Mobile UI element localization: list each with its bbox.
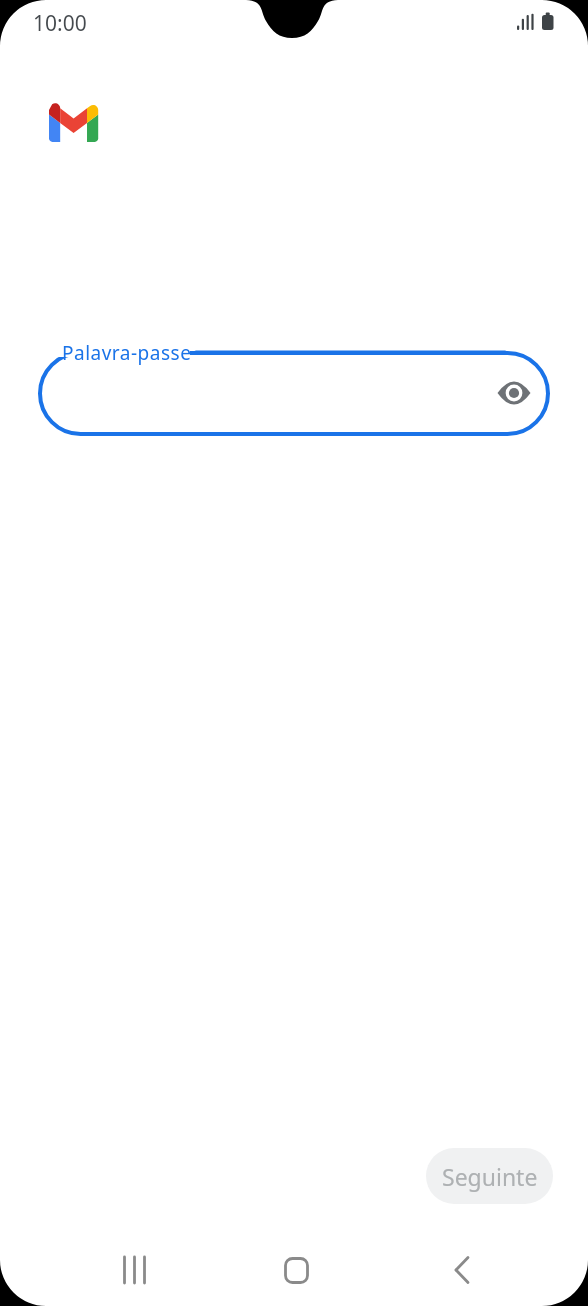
staticText: Palavra-passe bbox=[62, 340, 192, 366]
button[interactable] bbox=[432, 1240, 492, 1300]
button[interactable]: Seguinte bbox=[426, 1148, 553, 1204]
button[interactable] bbox=[489, 368, 539, 418]
staticText: 10:00 bbox=[33, 9, 87, 38]
button[interactable] bbox=[104, 1240, 164, 1300]
button[interactable] bbox=[266, 1240, 326, 1300]
staticText: Seguinte bbox=[442, 1161, 538, 1192]
button[interactable] bbox=[38, 351, 550, 436]
